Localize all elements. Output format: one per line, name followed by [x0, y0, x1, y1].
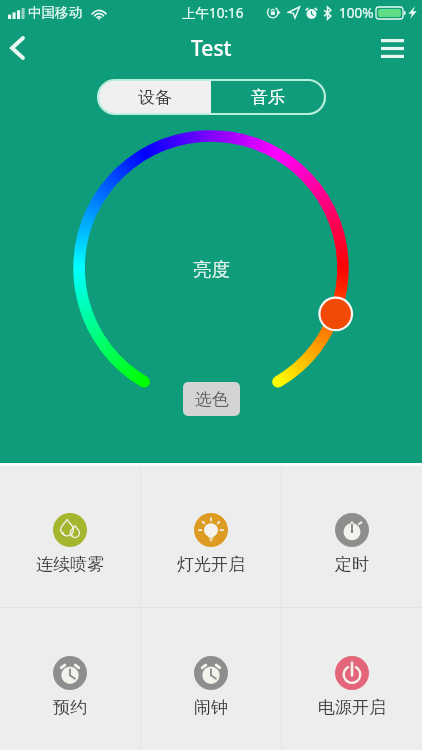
staticText: Test: [191, 34, 232, 63]
button[interactable]: 电源开启: [282, 608, 422, 750]
button[interactable]: 选色: [183, 382, 240, 416]
button[interactable]: 灯光开启: [141, 466, 281, 607]
button[interactable]: Menu: [374, 26, 422, 74]
staticText: 定时: [335, 554, 369, 575]
button[interactable]: 设备: [98, 80, 211, 114]
staticText: 100%: [339, 4, 374, 22]
button[interactable]: 闹钟: [141, 608, 281, 750]
staticText: 选色: [195, 389, 229, 410]
staticText: 灯光开启: [177, 554, 245, 575]
button[interactable]: 预约: [0, 608, 140, 750]
staticText: 音乐: [251, 87, 285, 108]
staticText: 电源开启: [318, 697, 386, 718]
staticText: 预约: [53, 697, 87, 718]
staticText: 上午10:16: [182, 4, 244, 22]
button[interactable]: 连续喷雾: [0, 466, 140, 607]
staticText: 中国移动: [28, 4, 82, 21]
staticText: 闹钟: [194, 697, 228, 718]
staticText: 设备: [138, 87, 172, 108]
staticText: 亮度: [193, 258, 230, 281]
button[interactable]: 定时: [282, 466, 422, 607]
staticText: 连续喷雾: [36, 554, 104, 575]
button[interactable]: 音乐: [211, 80, 325, 114]
button[interactable]: Back: [0, 26, 40, 74]
